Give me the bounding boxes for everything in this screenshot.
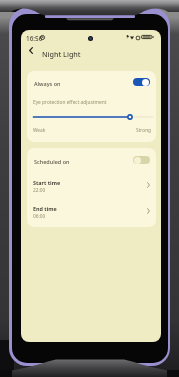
staticText: 06:00 [33, 213, 46, 220]
staticText: 22:00 [33, 187, 46, 194]
staticText: Night Light [42, 49, 81, 59]
staticText: Start time [33, 179, 61, 186]
staticText: Strong [136, 127, 152, 134]
button[interactable]: Always on [27, 71, 156, 95]
button[interactable]: End time [27, 199, 156, 225]
staticText: Weak [33, 127, 46, 134]
staticText: Eye protection effect adjustment [33, 99, 107, 106]
staticText: 16:56 [26, 34, 43, 43]
staticText: End time [33, 205, 57, 212]
button[interactable]: Scheduled on toggle [133, 156, 150, 164]
staticText: Scheduled on [34, 158, 70, 165]
button[interactable]: Start time [27, 173, 156, 199]
button[interactable]: Scheduled on [27, 148, 156, 173]
staticText: Always on [34, 80, 61, 87]
button[interactable]: Always on toggle [133, 78, 150, 86]
button[interactable]: Back [22, 42, 39, 59]
